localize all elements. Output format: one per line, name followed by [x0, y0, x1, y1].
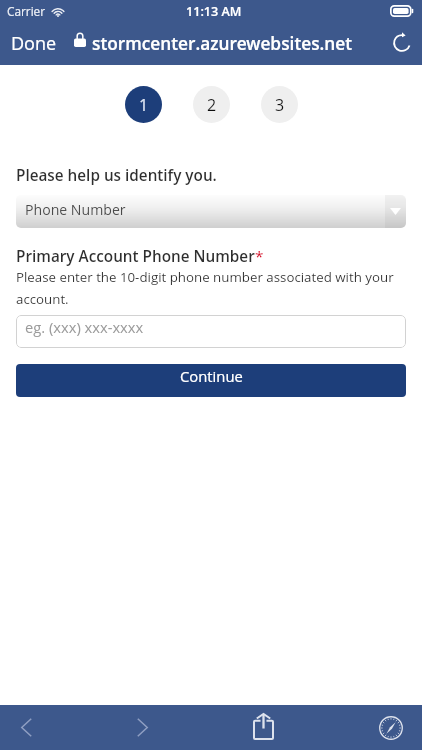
- staticText: Continue: [180, 366, 243, 386]
- button[interactable]: Forward: [120, 705, 164, 750]
- button[interactable]: Done: [11, 31, 57, 56]
- staticText: Carrier: [7, 3, 46, 19]
- button[interactable]: Bookmarks: [369, 705, 413, 750]
- button[interactable]: Back: [4, 705, 48, 750]
- staticText: 2: [207, 94, 217, 116]
- button[interactable]: Share: [241, 705, 285, 750]
- button[interactable]: eg. (xxx) xxx-xxxx: [16, 315, 406, 348]
- staticText: 3: [275, 94, 285, 116]
- staticText: Please enter the 10-digit phone number a…: [16, 268, 408, 308]
- staticText: eg. (xxx) xxx-xxxx: [25, 317, 144, 337]
- button[interactable]: Reload: [387, 27, 417, 57]
- staticText: Phone Number: [25, 200, 126, 219]
- staticText: 1: [139, 94, 149, 116]
- staticText: 11:13 AM: [186, 3, 242, 20]
- staticText: stormcenter.azurewebsites.net: [92, 32, 353, 56]
- button[interactable]: 3: [261, 86, 298, 123]
- staticText: *: [255, 246, 264, 267]
- button[interactable]: 2: [193, 86, 230, 123]
- staticText: Done: [11, 31, 57, 56]
- staticText: Primary Account Phone Number: [16, 246, 255, 267]
- button[interactable]: Continue: [16, 364, 406, 397]
- button[interactable]: 1: [125, 86, 162, 123]
- button[interactable]: Phone Number: [16, 195, 406, 228]
- staticText: Please help us identify you.: [16, 165, 217, 186]
